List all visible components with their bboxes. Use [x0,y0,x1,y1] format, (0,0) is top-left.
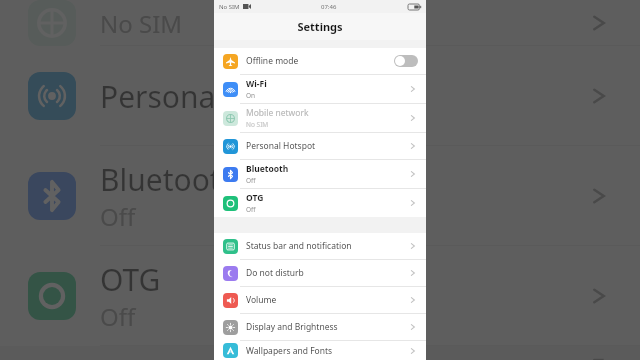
button[interactable]: OTG [214,189,426,217]
staticText: No SIM [246,120,269,129]
button[interactable]: Offline mode toggle [394,55,418,67]
staticText: Wi-Fi [246,78,267,90]
staticText: OTG [246,192,264,204]
staticText: Off [100,300,136,333]
staticText: 07:46 [321,3,337,11]
button[interactable]: Status bar and notification [214,233,426,259]
button[interactable]: Display and Brightness [214,314,426,340]
staticText: OTG [100,259,161,300]
staticText: Volume [246,294,277,306]
button[interactable]: Mobile network [214,104,426,132]
staticText: Wallpapers and Fonts [246,345,333,357]
button[interactable]: Wallpapers and Fonts [214,341,426,360]
staticText: Display and Brightness [246,321,338,333]
staticText: Bluetooth [100,159,240,200]
staticText: Off [100,200,136,233]
staticText: Mobile network [246,107,309,119]
staticText: Personal Hotspot [246,140,316,152]
staticText: No SIM [100,7,183,40]
button[interactable]: Volume [214,287,426,313]
staticText: Settings [297,19,343,34]
staticText: On [246,91,256,100]
button[interactable]: Do not disturb [214,260,426,286]
staticText: No SIM [219,3,240,11]
staticText: Status bar and notification [246,240,352,252]
button[interactable]: Offline mode [214,48,426,74]
staticText: Do not disturb [246,267,304,279]
staticText: Bluetooth [246,163,289,175]
staticText: Offline mode [246,55,299,67]
staticText: Off [246,205,256,214]
button[interactable]: Wi-Fi [214,75,426,103]
button[interactable]: Bluetooth [214,160,426,188]
button[interactable]: Personal Hotspot [214,133,426,159]
staticText: Off [246,176,256,185]
staticText: Personal [100,76,224,117]
